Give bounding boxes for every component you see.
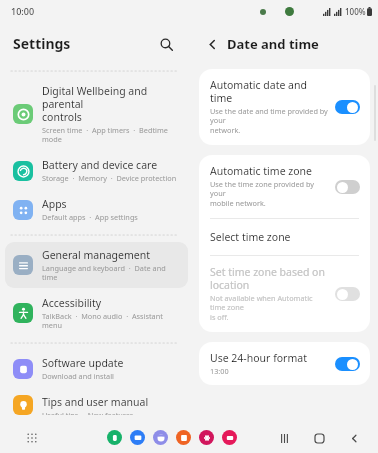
- button[interactable]: Use 24-hour format: [199, 342, 370, 385]
- button[interactable]: Battery and device care: [5, 152, 188, 189]
- staticText: Default apps · App settings: [42, 212, 138, 222]
- button[interactable]: Tips and user manual: [5, 389, 188, 421]
- staticText: Use the date and time provided by your n…: [210, 106, 329, 136]
- staticText: Storage · Memory · Device protection: [42, 173, 177, 183]
- staticText: 100%: [345, 6, 366, 17]
- button[interactable]: Toggle off: [335, 287, 360, 301]
- button[interactable]: Messages: [130, 430, 145, 445]
- staticText: Date and time: [227, 35, 319, 53]
- button[interactable]: Internet: [153, 430, 168, 445]
- button[interactable]: All apps: [22, 428, 42, 448]
- staticText: Not available when Automatic time zone i…: [210, 293, 329, 323]
- button[interactable]: Accessibility: [5, 290, 188, 336]
- staticText: Download and install: [42, 371, 114, 381]
- button[interactable]: Set time zone based on location: [199, 256, 370, 332]
- staticText: Software update: [42, 356, 124, 370]
- staticText: Settings: [13, 34, 71, 53]
- button[interactable]: Phone: [107, 430, 122, 445]
- button[interactable]: Apps: [5, 191, 188, 228]
- staticText: Set time zone based on location: [210, 265, 325, 292]
- button[interactable]: Toggle off: [335, 180, 360, 194]
- button[interactable]: Notes: [176, 430, 191, 445]
- staticText: Screen time · App timers · Bedtime mode: [42, 125, 180, 144]
- staticText: Automatic time zone: [210, 164, 312, 178]
- button[interactable]: Select time zone: [199, 219, 370, 255]
- button[interactable]: General management: [5, 242, 188, 288]
- button[interactable]: Search: [154, 32, 178, 56]
- button[interactable]: Recents: [273, 427, 295, 449]
- staticText: Useful tips · New features: [42, 410, 134, 415]
- staticText: Select time zone: [210, 230, 291, 244]
- staticText: Battery and device care: [42, 158, 158, 172]
- button[interactable]: Back: [343, 427, 365, 449]
- staticText: Use 24-hour format: [210, 351, 307, 365]
- staticText: TalkBack · Mono audio · Assistant menu: [42, 311, 180, 330]
- staticText: Accessibility: [42, 296, 102, 310]
- staticText: General management: [42, 248, 150, 262]
- button[interactable]: Software update: [5, 350, 188, 387]
- button[interactable]: Toggle on: [335, 100, 360, 114]
- staticText: 13:00: [210, 366, 229, 376]
- staticText: Digital Wellbeing and parental controls: [42, 84, 180, 124]
- staticText: Automatic date and time: [210, 78, 329, 105]
- staticText: Use the time zone provided by your mobil…: [210, 179, 329, 209]
- button[interactable]: Digital Wellbeing and parental controls: [5, 78, 188, 150]
- staticText: Language and keyboard · Date and time: [42, 263, 180, 282]
- button[interactable]: Automatic date and time: [199, 69, 370, 145]
- staticText: Tips and user manual: [42, 395, 149, 409]
- button[interactable]: Toggle on: [335, 357, 360, 371]
- button[interactable]: Camera: [222, 430, 237, 445]
- button[interactable]: Gallery: [199, 430, 214, 445]
- button[interactable]: Back: [201, 33, 223, 55]
- button[interactable]: Automatic time zone: [199, 155, 370, 218]
- staticText: 10:00: [11, 5, 35, 17]
- button[interactable]: Home: [308, 427, 330, 449]
- staticText: Apps: [42, 197, 67, 211]
